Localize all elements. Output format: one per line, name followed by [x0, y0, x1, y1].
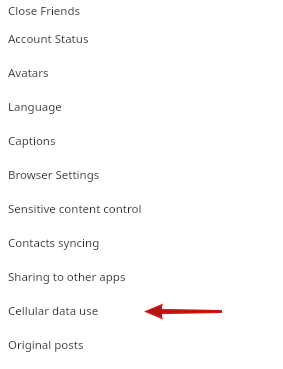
button[interactable]: Close Friends	[0, 0, 283, 22]
button[interactable]: Contacts syncing	[0, 226, 283, 260]
button[interactable]: Sensitive content control	[0, 192, 283, 226]
button[interactable]: Language	[0, 90, 283, 124]
button[interactable]: Account Status	[0, 22, 283, 56]
staticText: Language	[8, 99, 62, 115]
staticText: Avatars	[8, 65, 49, 81]
staticText: Sharing to other apps	[8, 269, 126, 285]
staticText: Browser Settings	[8, 167, 100, 183]
staticText: Captions	[8, 133, 56, 149]
button[interactable]: Browser Settings	[0, 158, 283, 192]
button[interactable]: Cellular data use	[0, 294, 283, 328]
button[interactable]: Original posts	[0, 328, 283, 362]
button[interactable]: Captions	[0, 124, 283, 158]
staticText: Contacts syncing	[8, 235, 100, 251]
staticText: Close Friends	[8, 3, 81, 19]
staticText: Cellular data use	[8, 303, 99, 319]
button[interactable]: Sharing to other apps	[0, 260, 283, 294]
staticText: Original posts	[8, 337, 84, 353]
other: Annotation arrow pointing to Cellular da…	[0, 294, 283, 328]
button[interactable]: Avatars	[0, 56, 283, 90]
staticText: Account Status	[8, 31, 89, 47]
staticText: Sensitive content control	[8, 201, 142, 217]
